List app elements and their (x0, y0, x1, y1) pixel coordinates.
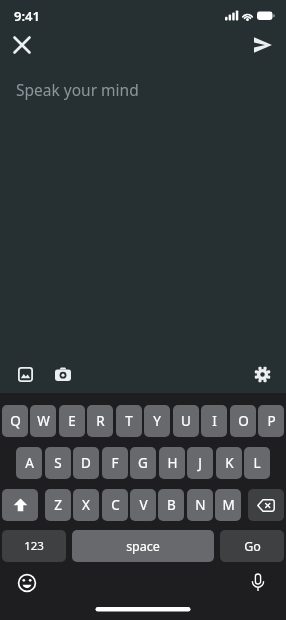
button[interactable]: Z (45, 489, 71, 521)
staticText: D (81, 454, 91, 472)
button[interactable]: P (258, 405, 284, 437)
button[interactable] (2, 489, 38, 521)
staticText: T (125, 412, 133, 430)
button[interactable] (242, 28, 284, 62)
button[interactable]: W (30, 405, 56, 437)
button[interactable]: C (102, 489, 128, 521)
button[interactable]: B (158, 489, 184, 521)
button[interactable]: A (16, 447, 42, 479)
button[interactable] (242, 569, 286, 613)
staticText: Z (54, 496, 62, 514)
button[interactable]: K (216, 447, 242, 479)
button[interactable] (13, 362, 37, 386)
staticText: O (238, 412, 249, 430)
button[interactable]: S (45, 447, 71, 479)
staticText: 123 (24, 538, 44, 554)
button[interactable]: X (73, 489, 99, 521)
staticText: P (267, 412, 276, 430)
staticText: S (54, 454, 62, 472)
button[interactable] (2, 28, 42, 62)
button[interactable]: I (201, 405, 227, 437)
button[interactable]: D (73, 447, 99, 479)
staticText: Q (10, 412, 21, 430)
button[interactable]: O (230, 405, 256, 437)
button[interactable]: 123 (2, 530, 66, 562)
button[interactable]: T (116, 405, 142, 437)
button[interactable]: V (130, 489, 156, 521)
staticText: K (225, 454, 234, 472)
staticText: H (167, 454, 178, 472)
staticText: space (126, 538, 160, 555)
button[interactable] (249, 361, 275, 387)
staticText: V (139, 496, 148, 514)
button[interactable]: Y (144, 405, 170, 437)
button[interactable]: L (244, 447, 270, 479)
button[interactable]: M (215, 489, 241, 521)
staticText: J (198, 454, 202, 472)
staticText: Go (244, 538, 261, 555)
staticText: R (96, 412, 105, 430)
button[interactable]: G (130, 447, 156, 479)
button[interactable] (248, 489, 284, 521)
button[interactable]: E (59, 405, 85, 437)
staticText: Speak your mind (16, 79, 139, 100)
staticText: C (111, 496, 120, 514)
staticText: E (68, 412, 76, 430)
button[interactable]: N (187, 489, 213, 521)
button[interactable]: H (159, 447, 185, 479)
staticText: G (138, 454, 148, 472)
staticText: U (181, 412, 191, 430)
button[interactable] (0, 569, 44, 613)
staticText: M (222, 496, 235, 514)
staticText: Y (153, 412, 161, 430)
staticText: F (111, 454, 119, 472)
button[interactable]: Go (220, 530, 284, 562)
button[interactable]: space (72, 530, 214, 562)
button[interactable]: U (173, 405, 199, 437)
staticText: I (212, 412, 217, 430)
staticText: N (195, 496, 206, 514)
button[interactable]: Q (2, 405, 28, 437)
staticText: L (253, 454, 261, 472)
button[interactable]: R (87, 405, 113, 437)
button[interactable]: F (102, 447, 128, 479)
button[interactable]: J (187, 447, 213, 479)
button[interactable] (50, 361, 76, 387)
staticText: B (167, 496, 176, 514)
staticText: W (37, 412, 50, 430)
staticText: A (25, 454, 34, 472)
staticText: 9:41 (14, 7, 40, 25)
staticText: X (82, 496, 90, 514)
